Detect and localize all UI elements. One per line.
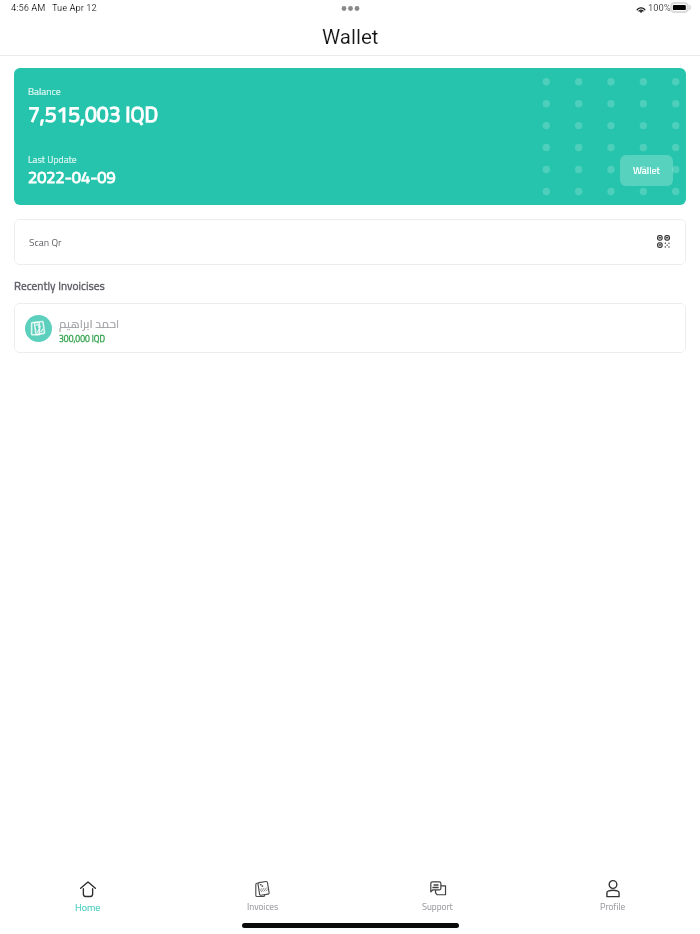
button[interactable]: احمد ابراهيم	[14, 303, 686, 353]
staticText: 100%	[648, 2, 671, 13]
other: Scan QR code	[657, 235, 670, 248]
staticText: 300,000 IQD	[59, 331, 106, 347]
staticText: 7,515,003 IQD	[28, 94, 159, 134]
staticText: Balance	[28, 82, 61, 100]
button[interactable]: Support	[350, 881, 525, 927]
staticText: 2022-04-09	[28, 162, 116, 193]
staticText: Wallet	[633, 161, 660, 180]
button[interactable]: Wallet	[620, 155, 673, 186]
button[interactable]: Scan Qr	[14, 219, 686, 265]
staticText: Profile	[600, 898, 626, 915]
staticText: Last Update	[28, 150, 77, 168]
button[interactable]: Profile	[525, 881, 700, 927]
staticText: Recently Invoicises	[14, 275, 105, 296]
button[interactable]: Balance	[14, 68, 686, 205]
staticText: Scan Qr	[29, 233, 62, 252]
staticText: Tue Apr 12	[52, 2, 97, 13]
button[interactable]: Home	[0, 881, 175, 927]
staticText: Wallet	[322, 25, 379, 49]
staticText: احمد ابراهيم	[59, 313, 120, 335]
staticText: Home	[75, 898, 101, 917]
button[interactable]: Invoices	[175, 881, 350, 927]
staticText: Support	[422, 898, 453, 915]
staticText: Invoices	[247, 898, 279, 915]
staticText: 4:56 AM	[11, 2, 46, 13]
